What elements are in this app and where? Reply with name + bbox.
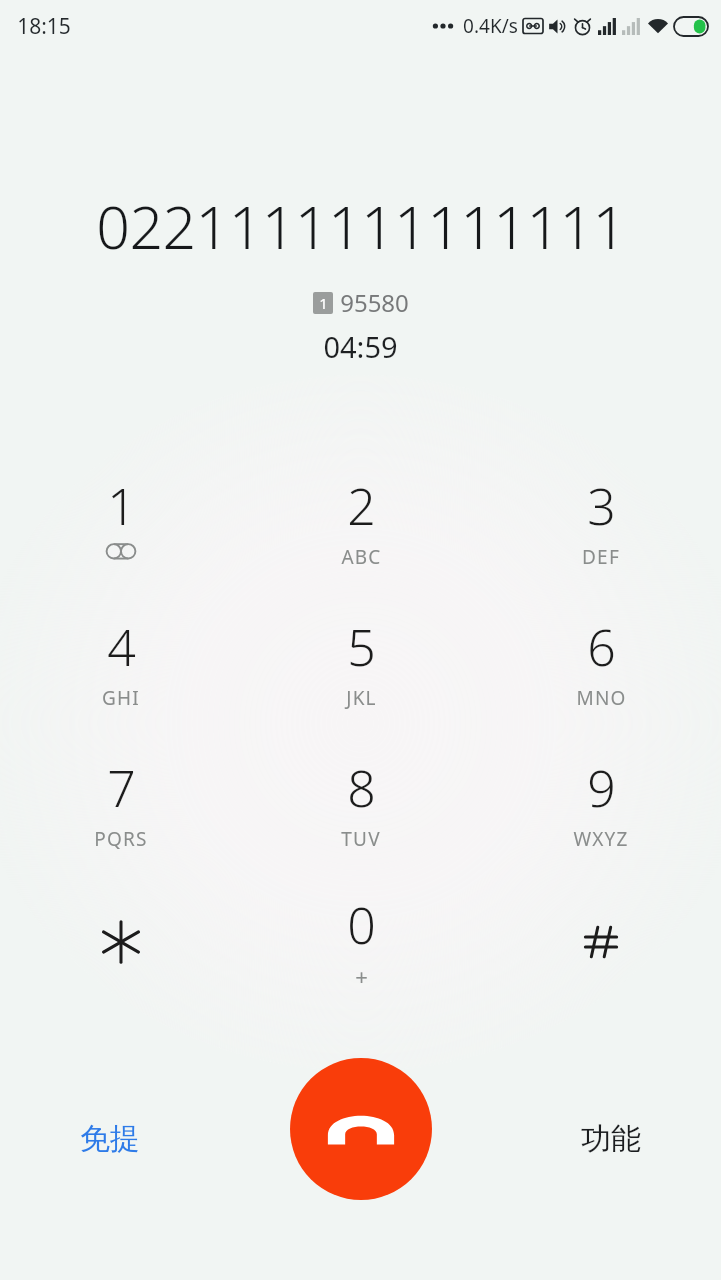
button[interactable]: 9 [481,744,721,885]
button[interactable]: 8 [241,744,481,885]
staticText: PQRS [94,826,148,852]
button[interactable]: 7 [0,744,241,885]
staticText: 1 [319,293,328,313]
button[interactable]: 5 [241,603,481,744]
staticText: 7 [107,754,136,822]
staticText: 6 [587,613,616,681]
button[interactable]: 2 [241,462,481,603]
staticText: 0221111111111111 [96,186,626,266]
staticText: TUV [341,826,381,852]
staticText: MNO [576,685,627,711]
staticText: DEF [582,544,620,570]
staticText: + [355,961,368,991]
staticText: 功能 [581,1120,641,1158]
button[interactable]: 3 [481,462,721,603]
staticText: GHI [102,685,140,711]
staticText: 0.4K/s [463,13,518,39]
button[interactable]: 1 [0,462,241,603]
staticText: 1 [107,472,136,540]
staticText: ABC [341,544,382,570]
staticText: 0 [347,891,376,959]
staticText: 3 [587,472,616,540]
staticText: 18:15 [17,12,71,41]
staticText: JKL [346,685,377,711]
staticText: 8 [347,754,376,822]
button[interactable]: 免提 [80,1120,140,1158]
button[interactable]: 4 [0,603,241,744]
staticText: 04:59 [323,327,398,366]
button[interactable]: 6 [481,603,721,744]
button[interactable]: 0 [241,885,481,1003]
staticText: 4 [107,613,136,681]
button[interactable] [481,885,721,1003]
button[interactable]: End call [290,1058,432,1200]
button[interactable] [0,885,241,1003]
staticText: 9 [587,754,616,822]
staticText: 免提 [80,1120,140,1158]
staticText: 5 [347,613,376,681]
staticText: WXYZ [573,826,629,852]
staticText: 2 [347,472,376,540]
button[interactable]: 功能 [581,1120,641,1158]
staticText: 95580 [340,286,409,319]
